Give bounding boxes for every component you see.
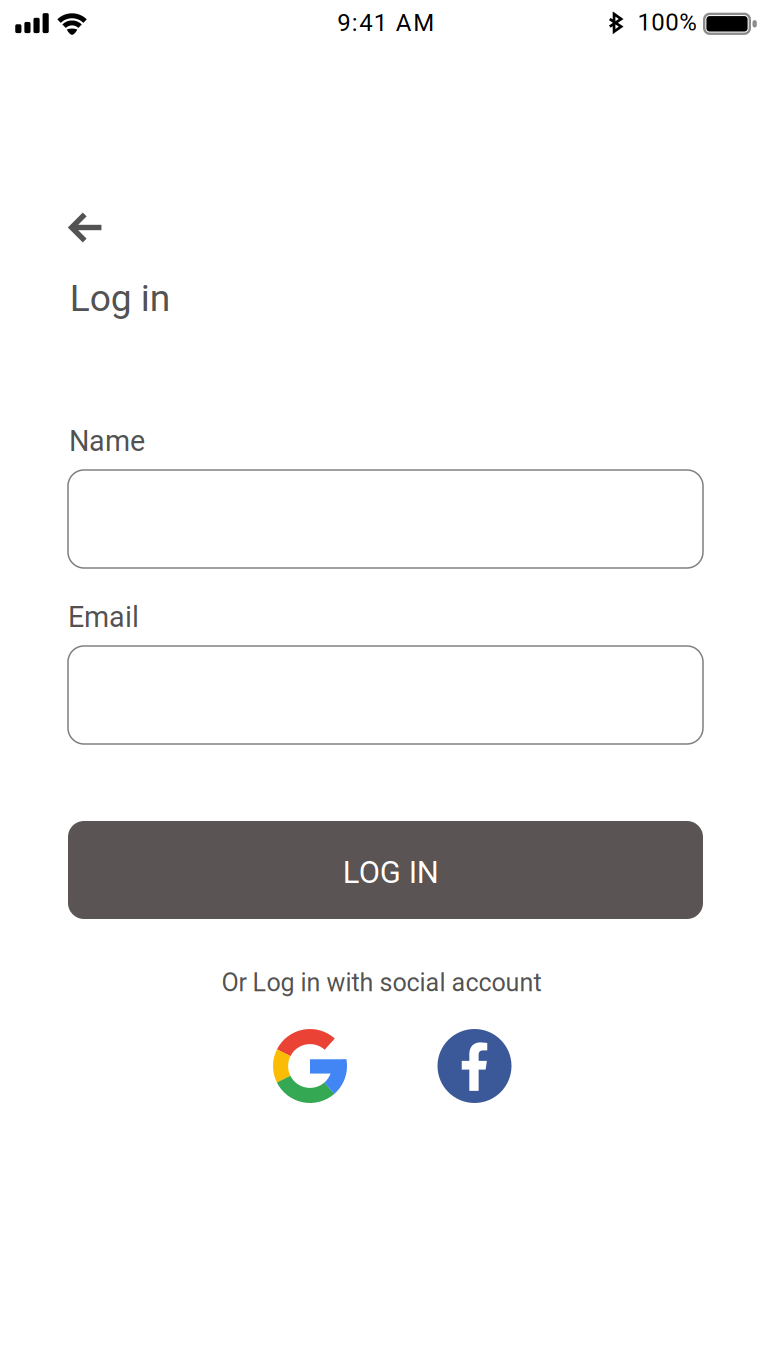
button[interactable]: Log in with Facebook (437, 1029, 511, 1103)
staticText: LOG IN (343, 854, 439, 890)
staticText: Email (68, 600, 139, 634)
staticText: Log in (70, 276, 171, 320)
staticText: 100% (637, 8, 697, 36)
button[interactable]: Back (55, 198, 115, 257)
staticText: Name (69, 424, 145, 458)
button[interactable]: Log in with Google (273, 1029, 347, 1103)
staticText: Or Log in with social account (221, 968, 541, 997)
button[interactable]: LOG IN (68, 821, 703, 919)
staticText: 9:41 AM (337, 9, 434, 37)
